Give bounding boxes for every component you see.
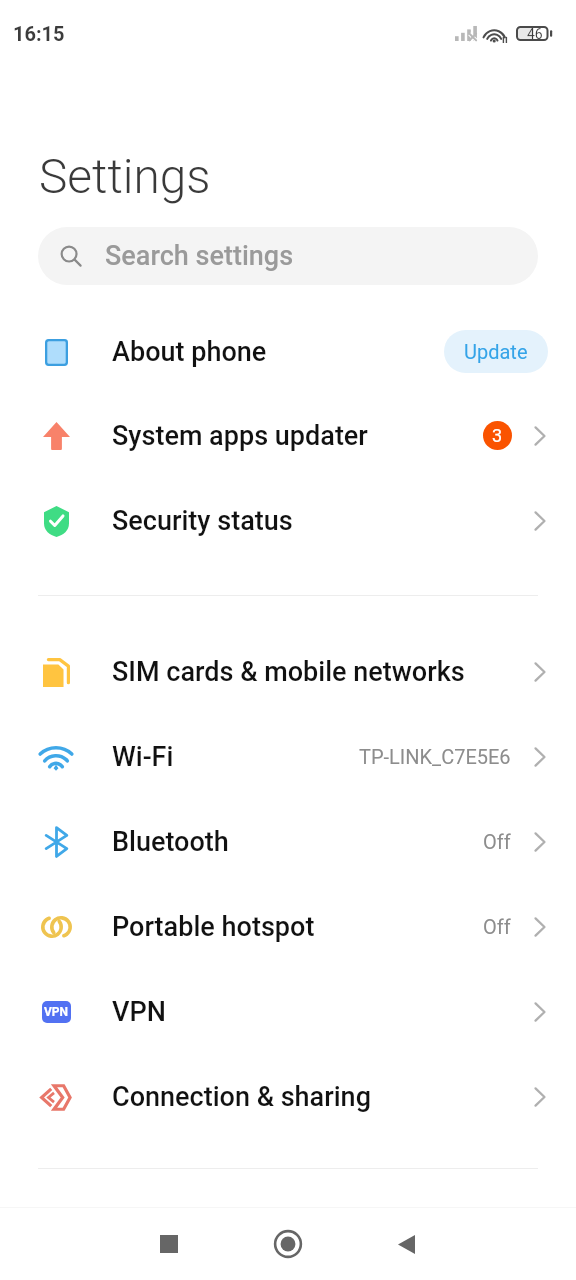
button[interactable]: Update [444,330,548,373]
staticText: Security status [112,505,293,537]
button[interactable]: Portable hotspot [0,884,576,969]
staticText: VPN [44,1005,69,1019]
staticText: Bluetooth [112,826,229,858]
staticText: Search settings [105,240,294,272]
staticText: Off [483,915,511,938]
staticText: Off [483,830,511,853]
button[interactable]: Bluetooth [0,799,576,884]
button[interactable]: Wi-Fi [0,714,576,799]
staticText: 46 [527,26,543,42]
button[interactable]: Search settings [38,227,538,285]
staticText: About phone [112,336,267,368]
staticText: System apps updater [112,420,368,452]
button[interactable]: About phone [0,309,576,394]
staticText: 16:15 [13,22,65,45]
button[interactable]: VPN [0,969,576,1054]
staticText: Portable hotspot [112,911,315,943]
button[interactable]: System apps updater [0,393,576,478]
staticText: 3 [492,425,503,446]
button[interactable]: Security status [0,478,576,563]
staticText: Connection & sharing [112,1081,371,1113]
staticText: Settings [39,149,211,205]
button[interactable]: SIM cards & mobile networks [0,629,576,714]
button[interactable]: Home [229,1208,346,1280]
staticText: TP-LINK_C7E5E6 [359,745,511,768]
button[interactable]: Recents [110,1208,227,1280]
button[interactable]: Connection & sharing [0,1054,576,1139]
staticText: Update [464,340,528,363]
button[interactable]: Back [348,1208,465,1280]
staticText: SIM cards & mobile networks [112,656,465,688]
staticText: VPN [112,996,166,1028]
staticText: Wi-Fi [112,741,174,773]
